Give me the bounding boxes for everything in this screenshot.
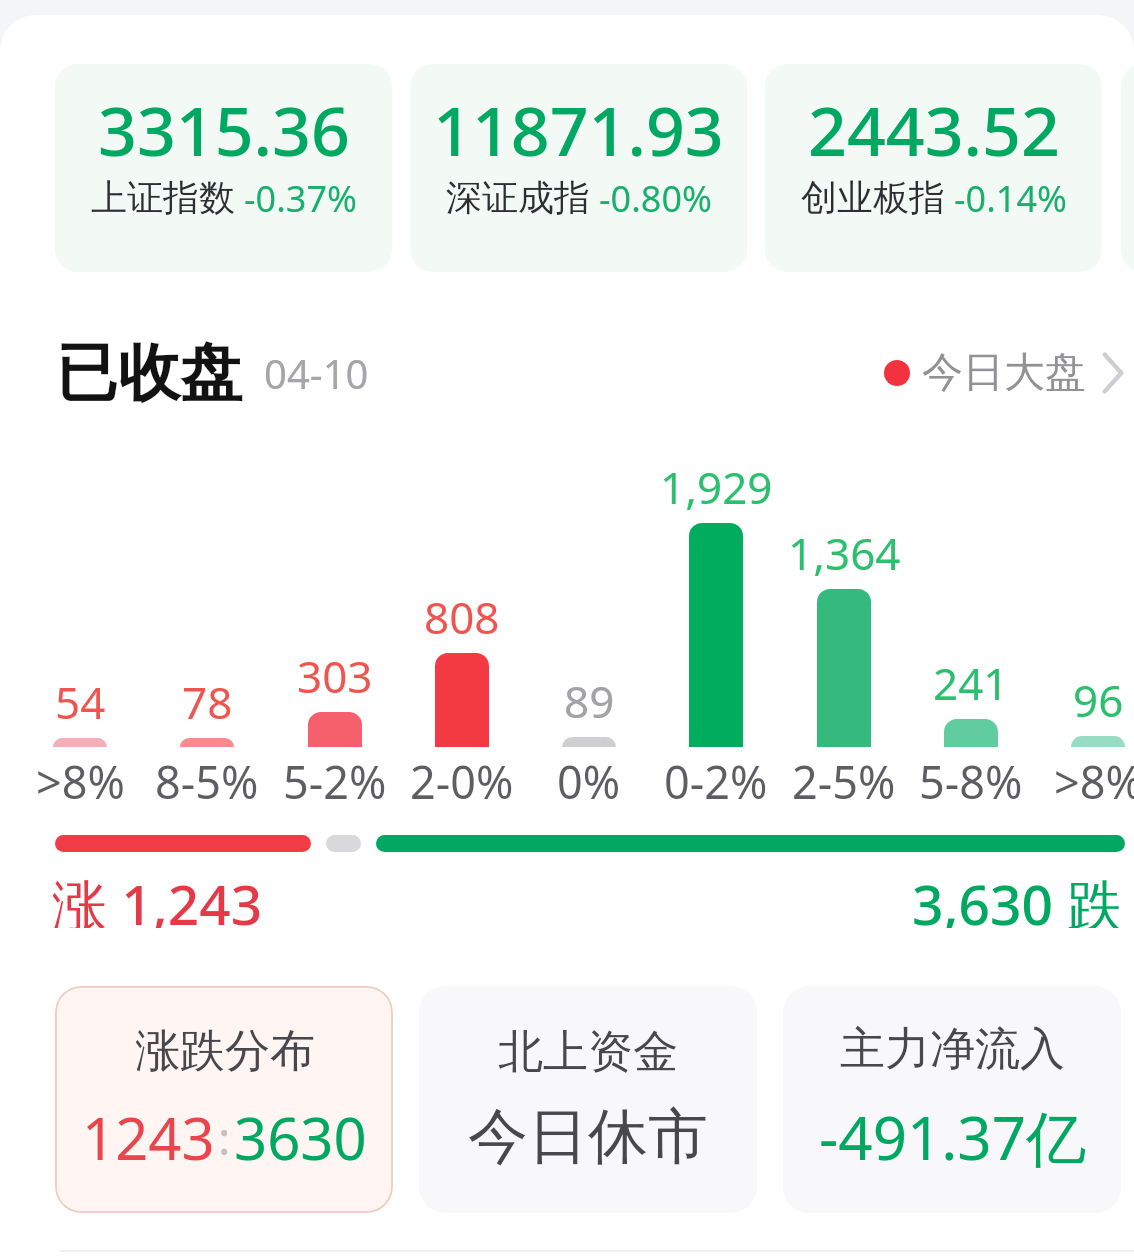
button[interactable]: 241	[908, 440, 1034, 808]
staticText: >8%	[36, 751, 125, 807]
button[interactable]: 89	[526, 440, 652, 808]
staticText: 深证成指	[446, 175, 590, 220]
button[interactable]: 北上资金	[419, 986, 757, 1213]
staticText: 8-5%	[155, 751, 259, 807]
staticText: 3,630 跌	[912, 866, 1123, 928]
staticText: 2-0%	[410, 751, 514, 807]
staticText: 303	[297, 646, 373, 706]
staticText: :	[218, 1106, 231, 1169]
staticText: 北上资金	[498, 1024, 678, 1081]
staticText: 96	[1073, 670, 1124, 730]
button[interactable]: 主力净流入	[783, 986, 1121, 1213]
button[interactable]: 1,364	[781, 440, 907, 808]
staticText: 5-2%	[283, 751, 387, 807]
staticText: 3315.36	[98, 83, 350, 159]
staticText: 04-10	[264, 346, 369, 400]
button[interactable]: 1,929	[653, 440, 779, 808]
button[interactable]: 78	[144, 440, 270, 808]
staticText: 11871.93	[433, 83, 724, 159]
staticText: 3630	[234, 1098, 367, 1177]
staticText: 808	[424, 587, 500, 647]
staticText: 1243	[82, 1098, 215, 1177]
staticText: 今日大盘	[922, 347, 1086, 399]
button[interactable]: 3315.36	[55, 64, 392, 272]
button[interactable]: 11871.93	[410, 64, 747, 272]
staticText: 78	[182, 672, 233, 732]
staticText: >8%	[1054, 751, 1134, 807]
button[interactable]: 54	[17, 440, 143, 808]
staticText: 主力净流入	[840, 1021, 1065, 1078]
staticText: 2-5%	[792, 751, 896, 807]
staticText: 89	[564, 671, 615, 731]
staticText: 涨跌分布	[135, 1023, 315, 1080]
staticText: 上证指数	[91, 175, 235, 220]
staticText: 涨 1,243	[52, 866, 263, 928]
button[interactable]: 2443.52	[765, 64, 1102, 272]
staticText: -0.80%	[599, 174, 712, 220]
staticText: -0.14%	[954, 174, 1067, 220]
button[interactable]: 808	[399, 440, 525, 808]
staticText: 2443.52	[808, 83, 1060, 159]
staticText: 5-8%	[919, 751, 1023, 807]
button[interactable]: 涨跌分布	[55, 986, 393, 1213]
staticText: 已收盘	[56, 334, 242, 412]
staticText: 创业板指	[801, 175, 945, 220]
staticText: 今日休市	[468, 1099, 708, 1175]
staticText: 1,364	[788, 523, 901, 583]
staticText: 1,929	[660, 457, 773, 517]
button[interactable]	[1121, 64, 1134, 272]
staticText: 54	[55, 672, 106, 732]
staticText: 0%	[557, 751, 621, 807]
button[interactable]: 96	[1035, 440, 1134, 808]
button[interactable]: 今日大盘	[874, 341, 1134, 405]
button[interactable]: 303	[272, 440, 398, 808]
staticText: -0.37%	[244, 174, 357, 220]
staticText: -491.37亿	[819, 1096, 1086, 1178]
staticText: 241	[933, 653, 1009, 713]
other: More	[1102, 352, 1124, 394]
staticText: 0-2%	[664, 751, 768, 807]
